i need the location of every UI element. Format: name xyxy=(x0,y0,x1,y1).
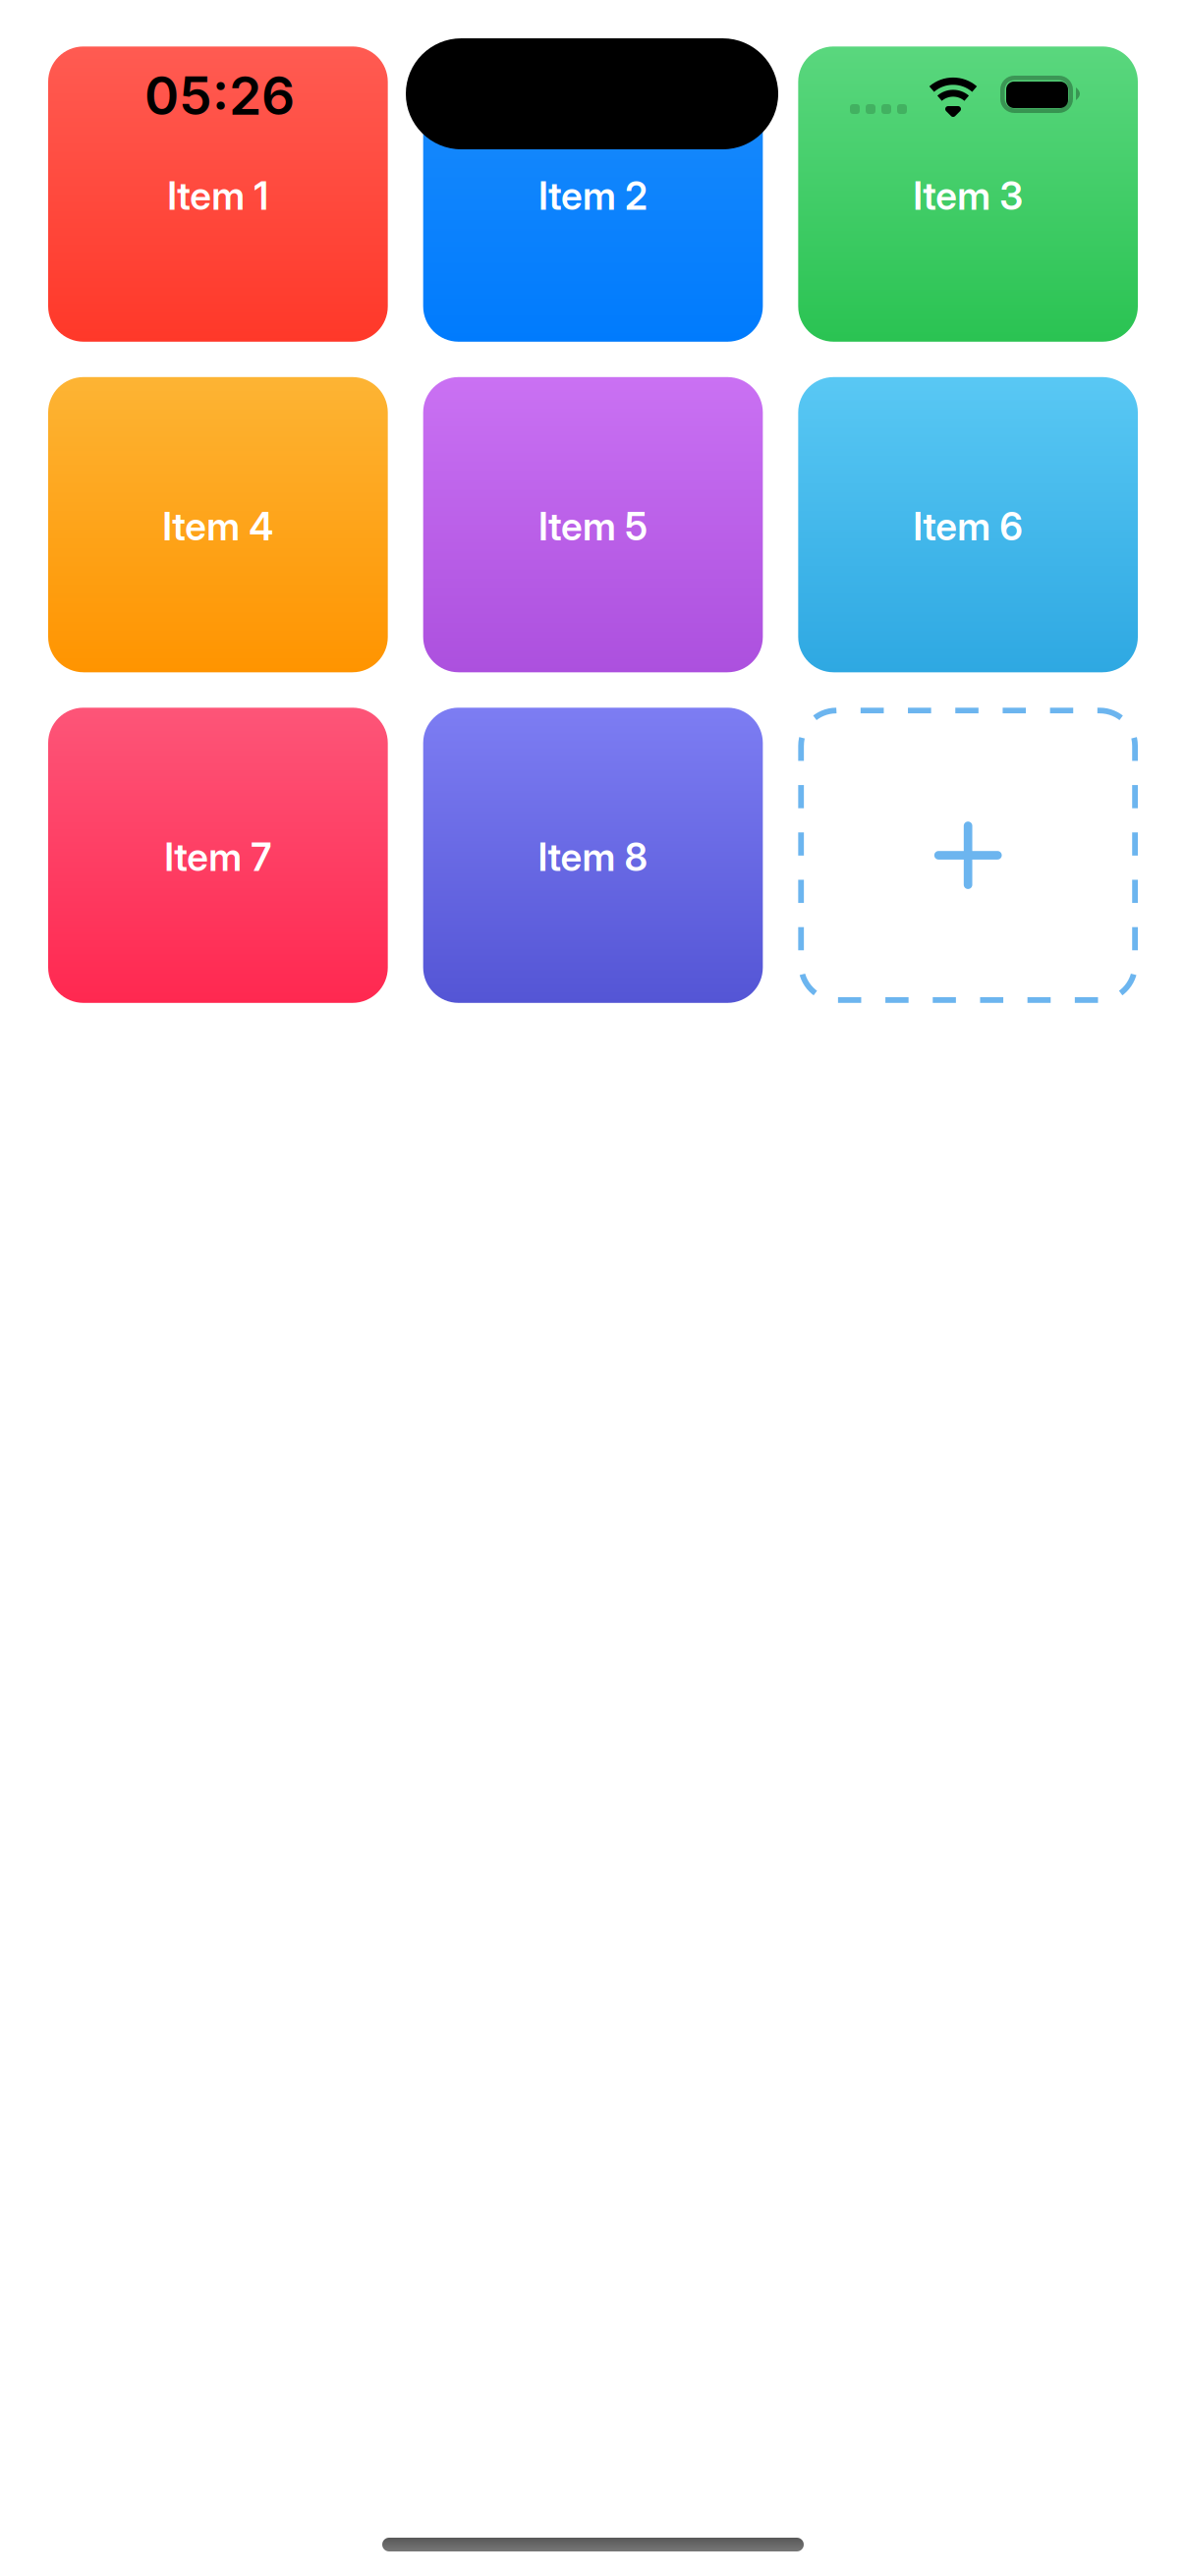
staticText: Item 4 xyxy=(162,504,273,550)
button[interactable]: Item 8 xyxy=(423,708,763,1003)
staticText: Item 3 xyxy=(913,173,1023,219)
button[interactable]: Item 6 xyxy=(798,377,1138,672)
staticText: Item 5 xyxy=(538,504,648,550)
button[interactable]: Item 4 xyxy=(48,377,388,672)
button[interactable]: Item 1 xyxy=(48,46,388,342)
staticText: Item 7 xyxy=(164,834,271,880)
button[interactable]: Item 2 xyxy=(423,46,763,342)
button[interactable]: Item 7 xyxy=(48,708,388,1003)
staticText: Item 6 xyxy=(913,504,1023,550)
button[interactable]: Item 3 xyxy=(798,46,1138,342)
button[interactable]: Add item xyxy=(798,708,1138,1003)
staticText: Item 2 xyxy=(538,173,648,219)
staticText: Item 8 xyxy=(538,834,648,880)
button[interactable]: Item 5 xyxy=(423,377,763,672)
staticText: Item 1 xyxy=(167,173,269,219)
staticText: 05:26 xyxy=(144,64,295,127)
